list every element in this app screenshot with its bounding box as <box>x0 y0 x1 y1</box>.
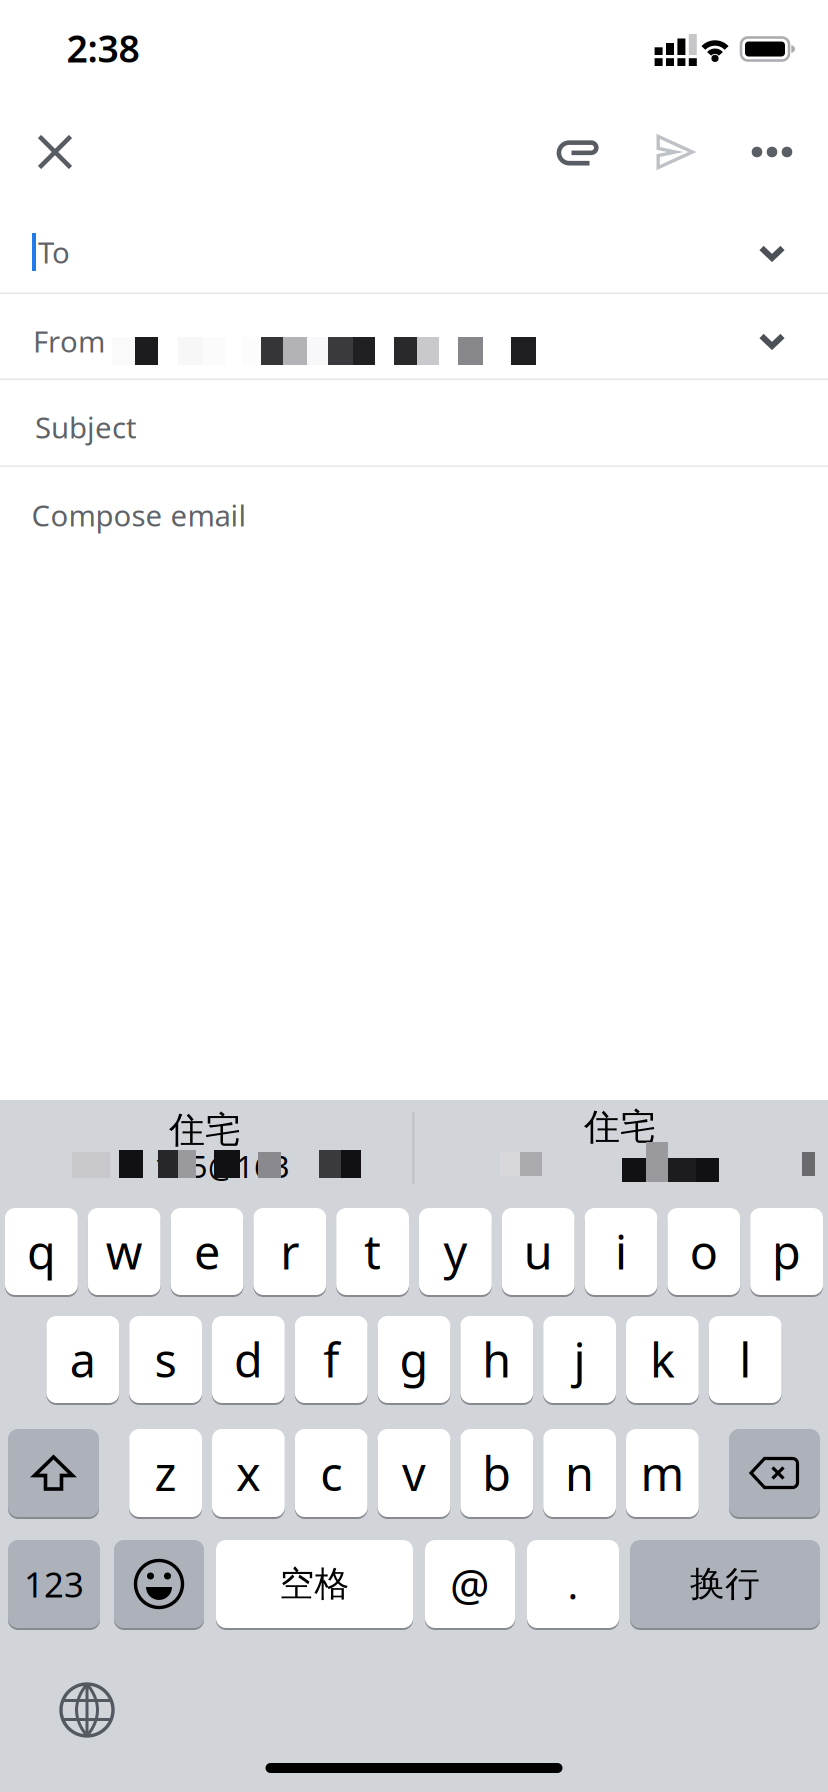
staticText: To <box>38 232 70 271</box>
button[interactable]: j <box>543 1316 616 1405</box>
button[interactable]: u <box>502 1208 575 1297</box>
staticText: w <box>106 1220 143 1282</box>
button[interactable]: 123 <box>8 1540 100 1630</box>
button[interactable] <box>0 209 828 292</box>
button[interactable]: z <box>129 1429 202 1519</box>
button[interactable]: @ <box>425 1540 515 1630</box>
button[interactable]: g <box>378 1316 450 1405</box>
staticText: x <box>236 1442 261 1504</box>
button[interactable] <box>0 293 828 378</box>
button[interactable]: t <box>336 1208 409 1297</box>
staticText: v <box>402 1442 426 1504</box>
button[interactable]: 住宅 <box>0 1100 413 1200</box>
button[interactable]: w <box>88 1208 161 1297</box>
staticText: u <box>524 1220 553 1282</box>
staticText: d <box>234 1328 263 1390</box>
staticText: r <box>280 1220 299 1282</box>
staticText: Compose email <box>31 495 246 534</box>
button[interactable]: s <box>129 1316 202 1405</box>
button[interactable] <box>759 333 785 349</box>
staticText: 住宅 <box>584 1105 656 1149</box>
button[interactable]: l <box>709 1316 782 1405</box>
button[interactable]: e <box>171 1208 243 1297</box>
staticText: p <box>772 1220 801 1282</box>
staticText: l <box>739 1328 751 1390</box>
button[interactable] <box>0 379 828 465</box>
staticText: . <box>567 1557 578 1610</box>
staticText: 空格 <box>279 1563 349 1605</box>
button[interactable]: k <box>626 1316 699 1405</box>
button[interactable]: r <box>253 1208 326 1297</box>
button[interactable]: . <box>527 1540 619 1630</box>
staticText: f <box>323 1328 339 1390</box>
button[interactable] <box>0 467 828 567</box>
button[interactable]: n <box>543 1429 616 1519</box>
button[interactable]: c <box>295 1429 368 1519</box>
staticText: 123 <box>24 1561 84 1607</box>
staticText: 135@163 <box>154 1146 290 1186</box>
button[interactable] <box>114 1540 204 1630</box>
button[interactable] <box>751 146 793 158</box>
staticText: j <box>574 1328 586 1390</box>
staticText: n <box>565 1442 594 1504</box>
button[interactable]: i <box>585 1208 657 1297</box>
button[interactable]: 空格 <box>216 1540 413 1630</box>
staticText: s <box>155 1328 177 1390</box>
button[interactable]: o <box>667 1208 740 1297</box>
staticText: @ <box>450 1555 490 1613</box>
button[interactable]: d <box>212 1316 285 1405</box>
staticText: m <box>640 1442 684 1504</box>
button[interactable]: h <box>460 1316 533 1405</box>
button[interactable]: a <box>46 1316 119 1405</box>
staticText: k <box>650 1328 675 1390</box>
button[interactable] <box>8 1429 99 1519</box>
button[interactable] <box>558 138 602 168</box>
staticText: 换行 <box>690 1563 760 1605</box>
staticText: Subject <box>35 407 137 446</box>
staticText: 2:38 <box>66 23 139 73</box>
button[interactable]: v <box>378 1429 450 1519</box>
staticText: a <box>70 1328 96 1390</box>
button[interactable]: 住宅 <box>415 1100 828 1200</box>
button[interactable]: y <box>419 1208 492 1297</box>
button[interactable]: q <box>5 1208 78 1297</box>
button[interactable]: p <box>750 1208 823 1297</box>
button[interactable]: f <box>295 1316 368 1405</box>
staticText: t <box>364 1220 381 1282</box>
staticText: o <box>690 1220 718 1282</box>
staticText: From <box>33 321 105 360</box>
button[interactable] <box>759 245 785 261</box>
button[interactable] <box>59 1682 115 1738</box>
staticText: i <box>615 1220 627 1282</box>
staticText: q <box>27 1220 56 1282</box>
staticText: h <box>482 1328 511 1390</box>
staticText: e <box>194 1220 220 1282</box>
button[interactable]: 换行 <box>630 1540 820 1630</box>
button[interactable] <box>37 134 73 170</box>
staticText: b <box>482 1442 511 1504</box>
button[interactable]: m <box>626 1429 699 1519</box>
button[interactable]: b <box>460 1429 533 1519</box>
button[interactable]: x <box>212 1429 285 1519</box>
staticText: g <box>399 1328 428 1390</box>
staticText: 住宅 <box>169 1108 241 1152</box>
button[interactable] <box>655 132 695 172</box>
button[interactable] <box>729 1429 820 1519</box>
staticText: y <box>443 1220 467 1282</box>
staticText: z <box>155 1442 177 1504</box>
staticText: c <box>320 1442 342 1504</box>
